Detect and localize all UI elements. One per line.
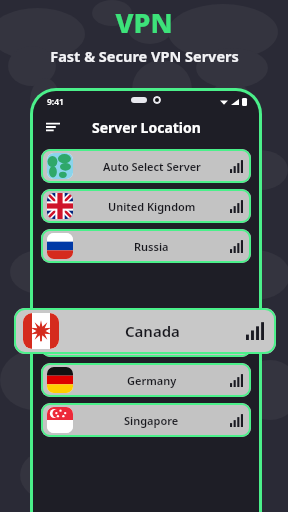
staticText: Auto Select Server bbox=[103, 159, 201, 174]
button[interactable]: India bbox=[41, 323, 251, 357]
button[interactable]: Germany bbox=[41, 363, 251, 397]
staticText: Fast & Secure VPN Servers bbox=[50, 46, 239, 66]
button[interactable]: Singapore bbox=[41, 403, 251, 437]
button[interactable]: Auto Select Server bbox=[41, 149, 251, 183]
staticText: Singapore bbox=[124, 413, 179, 428]
button[interactable]: Russia bbox=[41, 229, 251, 263]
button[interactable]: Canada bbox=[14, 308, 276, 354]
staticText: Russia bbox=[134, 239, 169, 254]
button[interactable]: United Kigndom bbox=[41, 189, 251, 223]
staticText: 9:41 bbox=[47, 96, 64, 108]
staticText: Germany bbox=[127, 373, 177, 388]
staticText: United Kigndom bbox=[108, 199, 196, 214]
button[interactable]: Menu bbox=[41, 115, 65, 139]
staticText: India bbox=[138, 333, 166, 348]
staticText: Server Location bbox=[92, 118, 201, 137]
staticText: VPN bbox=[115, 4, 173, 41]
staticText: Canada bbox=[125, 321, 180, 341]
